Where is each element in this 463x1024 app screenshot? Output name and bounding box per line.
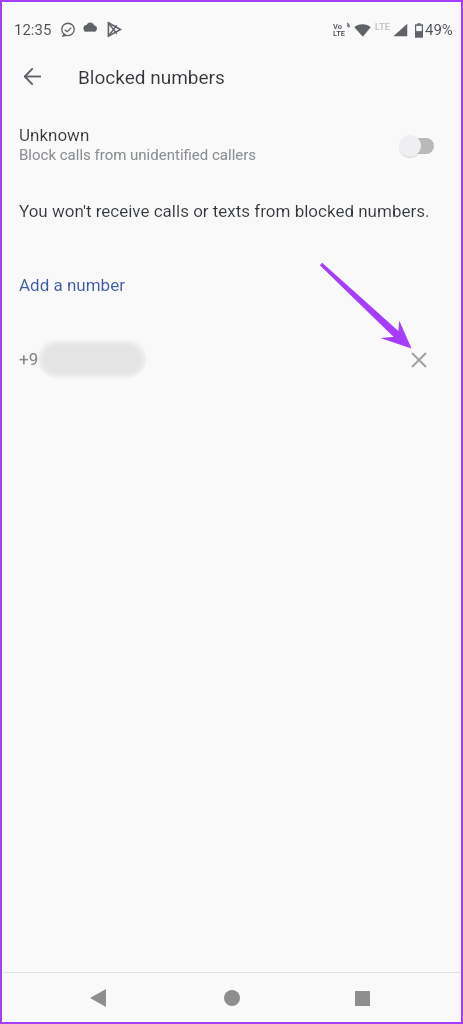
staticText: Add a number (19, 275, 125, 295)
button[interactable]: Add a number (3, 269, 460, 309)
staticText: +9 (19, 349, 39, 369)
staticText: Block calls from unidentified callers (19, 146, 257, 164)
staticText: Vo (333, 22, 342, 31)
button[interactable]: Remove blocked number (403, 344, 435, 376)
button[interactable]: Recent apps (324, 974, 400, 1022)
staticText: 49% (425, 21, 453, 39)
button[interactable]: Home (194, 974, 270, 1022)
staticText: Blocked numbers (78, 66, 225, 88)
button[interactable]: Back (60, 974, 136, 1022)
staticText: Unknown (19, 125, 90, 145)
staticText: 12:35 (14, 21, 52, 39)
staticText: You won't receive calls or texts from bl… (19, 201, 430, 221)
staticText: LTE (333, 29, 346, 38)
button[interactable]: Back (8, 52, 56, 100)
staticText: LTE (375, 21, 391, 32)
button[interactable]: Unknown (3, 115, 460, 177)
